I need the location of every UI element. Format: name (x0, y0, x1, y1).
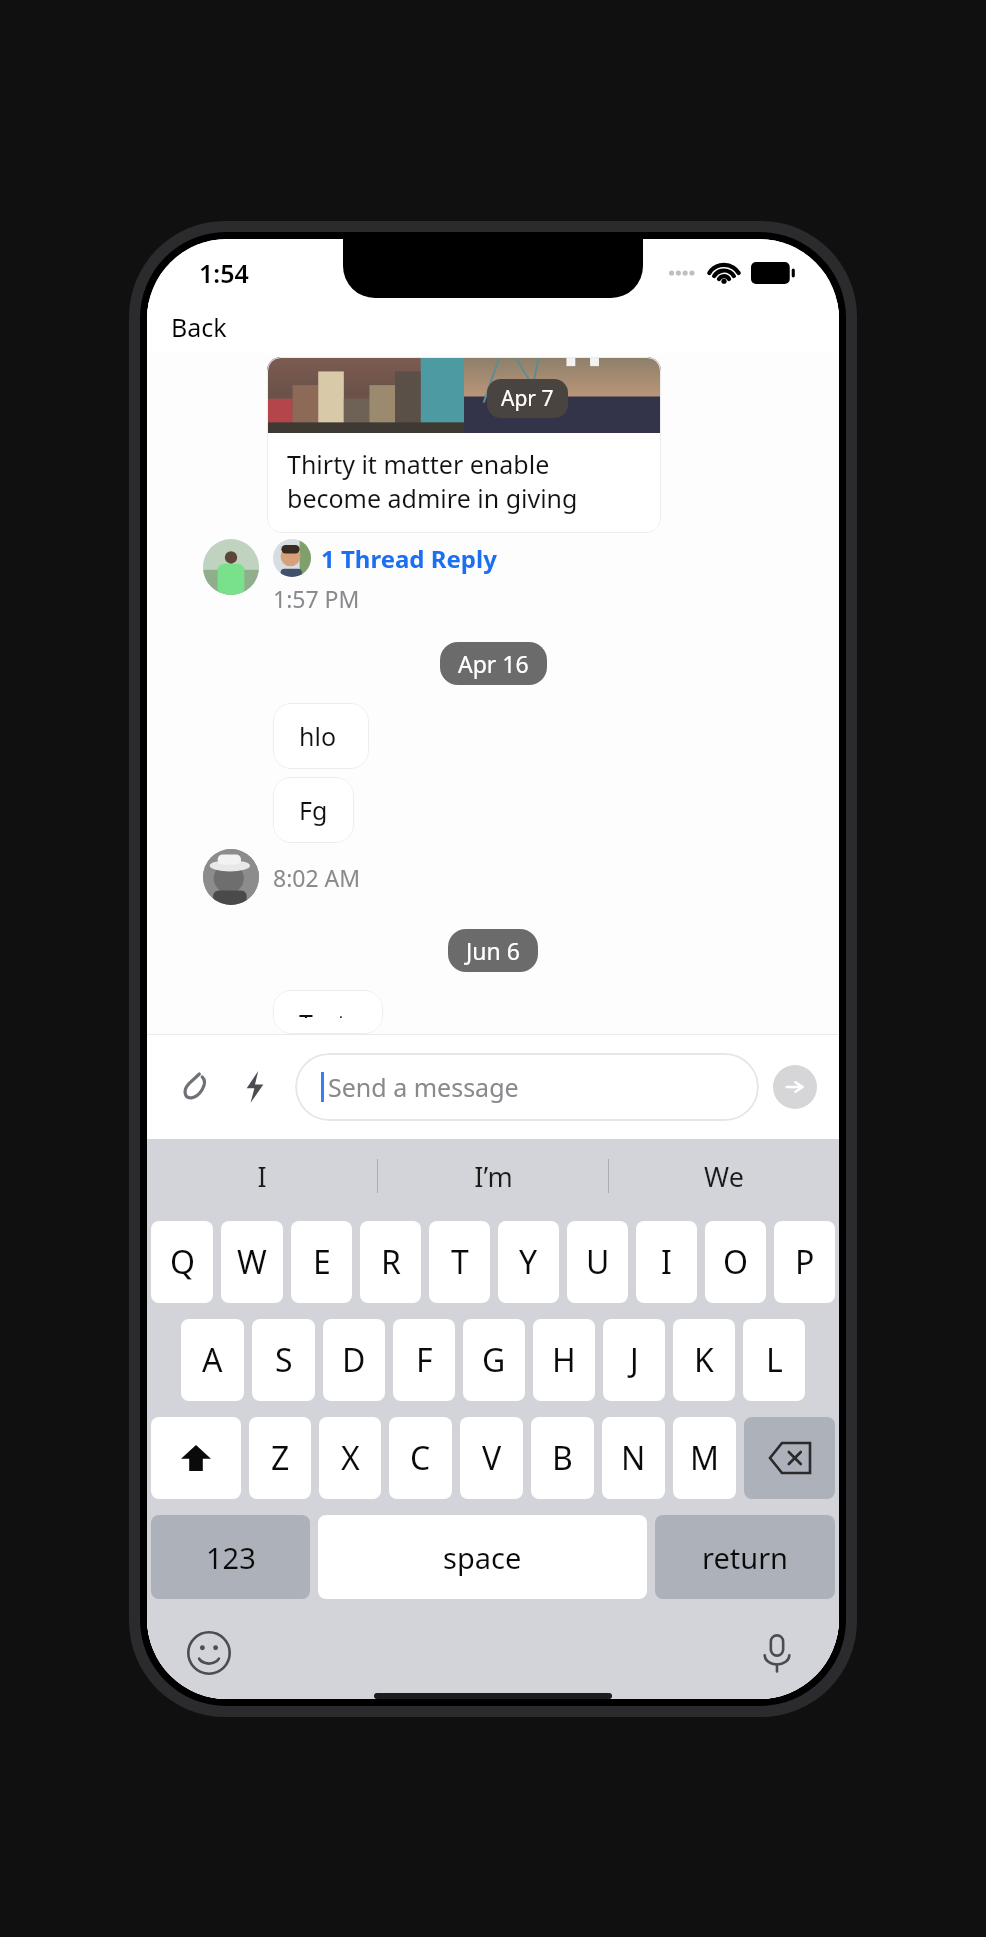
button[interactable]: Fg (273, 777, 354, 843)
staticText: 1:57 PM (273, 583, 360, 614)
button[interactable]: K (673, 1319, 735, 1401)
staticText: K (694, 1338, 714, 1382)
button[interactable]: X (319, 1417, 381, 1499)
button[interactable]: S (252, 1319, 315, 1401)
staticText: 8:02 AM (273, 862, 361, 893)
button[interactable]: U (567, 1221, 628, 1303)
staticText: Test (299, 1006, 347, 1018)
staticText: H (552, 1338, 576, 1382)
button[interactable]: Send a message (295, 1053, 759, 1121)
button[interactable]: Q (151, 1221, 213, 1303)
staticText: A (202, 1338, 223, 1382)
button[interactable]: E (291, 1221, 352, 1303)
button[interactable]: W (221, 1221, 283, 1303)
staticText: V (482, 1436, 502, 1480)
staticText: Z (271, 1436, 290, 1480)
button[interactable]: J (603, 1319, 665, 1401)
button[interactable]: O (705, 1221, 766, 1303)
button[interactable]: Dictate (749, 1625, 805, 1681)
button[interactable]: I (636, 1221, 697, 1303)
button[interactable]: A (181, 1319, 244, 1401)
staticText: space (443, 1538, 522, 1577)
button[interactable]: Shift (151, 1417, 241, 1499)
staticText: R (381, 1240, 401, 1284)
button[interactable]: Y (498, 1221, 559, 1303)
button[interactable]: Back (161, 306, 237, 348)
staticText: F (416, 1338, 433, 1382)
staticText: U (586, 1240, 610, 1284)
staticText: N (621, 1436, 646, 1480)
staticText: Y (519, 1240, 538, 1284)
staticText: W (237, 1240, 267, 1284)
staticText: S (275, 1338, 293, 1382)
button[interactable]: Test (273, 990, 383, 1034)
button[interactable]: I’m (378, 1139, 608, 1213)
staticText: 123 (206, 1538, 256, 1577)
staticText: E (313, 1240, 331, 1284)
button[interactable]: Quick actions (229, 1061, 281, 1113)
button[interactable]: I (147, 1139, 377, 1213)
staticText: hlo (299, 719, 337, 753)
button[interactable]: N (602, 1417, 665, 1499)
button[interactable]: B (531, 1417, 594, 1499)
staticText: We (704, 1158, 744, 1195)
button[interactable]: D (323, 1319, 385, 1401)
staticText: L (766, 1338, 783, 1382)
staticText: Fg (299, 793, 328, 827)
staticText: O (723, 1240, 748, 1284)
button[interactable]: hlo (273, 703, 369, 769)
staticText: C (410, 1436, 431, 1480)
staticText: Jun 6 (466, 935, 520, 966)
staticText: B (552, 1436, 573, 1480)
button[interactable]: H (533, 1319, 595, 1401)
button[interactable]: L (743, 1319, 805, 1401)
staticText: G (482, 1338, 506, 1382)
staticText: I (661, 1240, 672, 1284)
button[interactable]: Backspace (744, 1417, 835, 1499)
button[interactable]: Z (249, 1417, 311, 1499)
staticText: I’m (474, 1158, 513, 1195)
staticText: Send a message (328, 1070, 519, 1104)
button[interactable]: Thirty it matter enable become admire in… (267, 357, 661, 533)
button[interactable]: We (609, 1139, 839, 1213)
staticText: 1 Thread Reply (321, 542, 497, 575)
button[interactable]: R (360, 1221, 421, 1303)
button[interactable]: G (463, 1319, 525, 1401)
staticText: Apr 7 (501, 384, 554, 413)
button[interactable]: 123 (151, 1515, 310, 1599)
staticText: Q (170, 1240, 195, 1284)
staticText: 1:54 (199, 256, 249, 290)
staticText: D (342, 1338, 366, 1382)
button[interactable]: Attach file (169, 1061, 221, 1113)
staticText: J (630, 1338, 639, 1382)
staticText: P (795, 1240, 815, 1284)
staticText: return (702, 1538, 789, 1577)
staticText: X (341, 1436, 360, 1480)
button[interactable]: 1 Thread Reply (273, 539, 497, 577)
button[interactable]: V (460, 1417, 523, 1499)
button[interactable]: return (655, 1515, 835, 1599)
button[interactable]: T (429, 1221, 490, 1303)
button[interactable]: P (774, 1221, 835, 1303)
staticText: T (451, 1240, 469, 1284)
staticText: Thirty it matter enable become admire in… (287, 447, 645, 515)
staticText: Apr 16 (458, 648, 529, 679)
staticText: Back (171, 310, 227, 344)
button[interactable]: C (389, 1417, 452, 1499)
button[interactable]: Send (773, 1065, 817, 1109)
button[interactable]: M (673, 1417, 736, 1499)
staticText: I (257, 1158, 267, 1195)
button[interactable]: space (318, 1515, 647, 1599)
button[interactable]: F (393, 1319, 455, 1401)
button[interactable]: Emoji (181, 1625, 237, 1681)
staticText: M (690, 1436, 720, 1480)
